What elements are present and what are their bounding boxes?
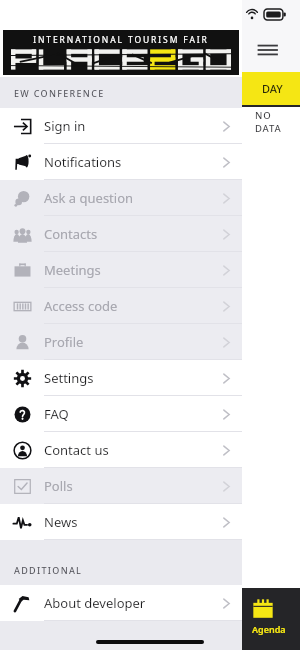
button[interactable]: FAQ <box>0 396 242 432</box>
button[interactable]: Settings <box>0 360 242 396</box>
staticText: NO DATA <box>255 109 300 135</box>
button[interactable]: News <box>0 504 242 540</box>
staticText: EW CONFERENCE <box>14 87 105 99</box>
staticText: News <box>44 513 78 531</box>
staticText: Ask a question <box>44 189 134 207</box>
staticText: Notifications <box>44 153 122 171</box>
staticText: FAQ <box>44 405 69 423</box>
staticText: Meetings <box>44 261 101 279</box>
staticText: Settings <box>44 369 94 387</box>
staticText: DAY <box>262 81 283 96</box>
staticText: Contact us <box>44 441 109 459</box>
staticText: INTERNATIONAL TOURISM FAIR <box>11 34 231 46</box>
staticText: Profile <box>44 333 84 351</box>
button[interactable]: Open navigation menu <box>255 37 281 63</box>
button[interactable]: Contact us <box>0 432 242 468</box>
staticText: Agenda <box>252 623 286 635</box>
button[interactable]: Sign in <box>0 108 242 144</box>
staticText: About developer <box>44 594 146 612</box>
button[interactable]: Notifications <box>0 144 242 180</box>
staticText: Contacts <box>44 225 98 243</box>
button[interactable]: DAY <box>0 72 300 105</box>
staticText: Polls <box>44 477 73 495</box>
button[interactable]: Meetings <box>0 252 242 288</box>
button[interactable]: Agenda <box>252 598 286 635</box>
button[interactable]: Ask a question <box>0 180 242 216</box>
staticText: ADDITIONAL <box>14 564 83 576</box>
button[interactable]: Access code <box>0 288 242 324</box>
staticText: Sign in <box>44 117 86 135</box>
staticText: Access code <box>44 297 118 315</box>
button[interactable]: About developer <box>0 585 242 621</box>
button[interactable]: INTERNATIONAL TOURISM FAIR <box>3 30 239 75</box>
button[interactable]: Polls <box>0 468 242 504</box>
button[interactable]: Contacts <box>0 216 242 252</box>
button[interactable]: Profile <box>0 324 242 360</box>
